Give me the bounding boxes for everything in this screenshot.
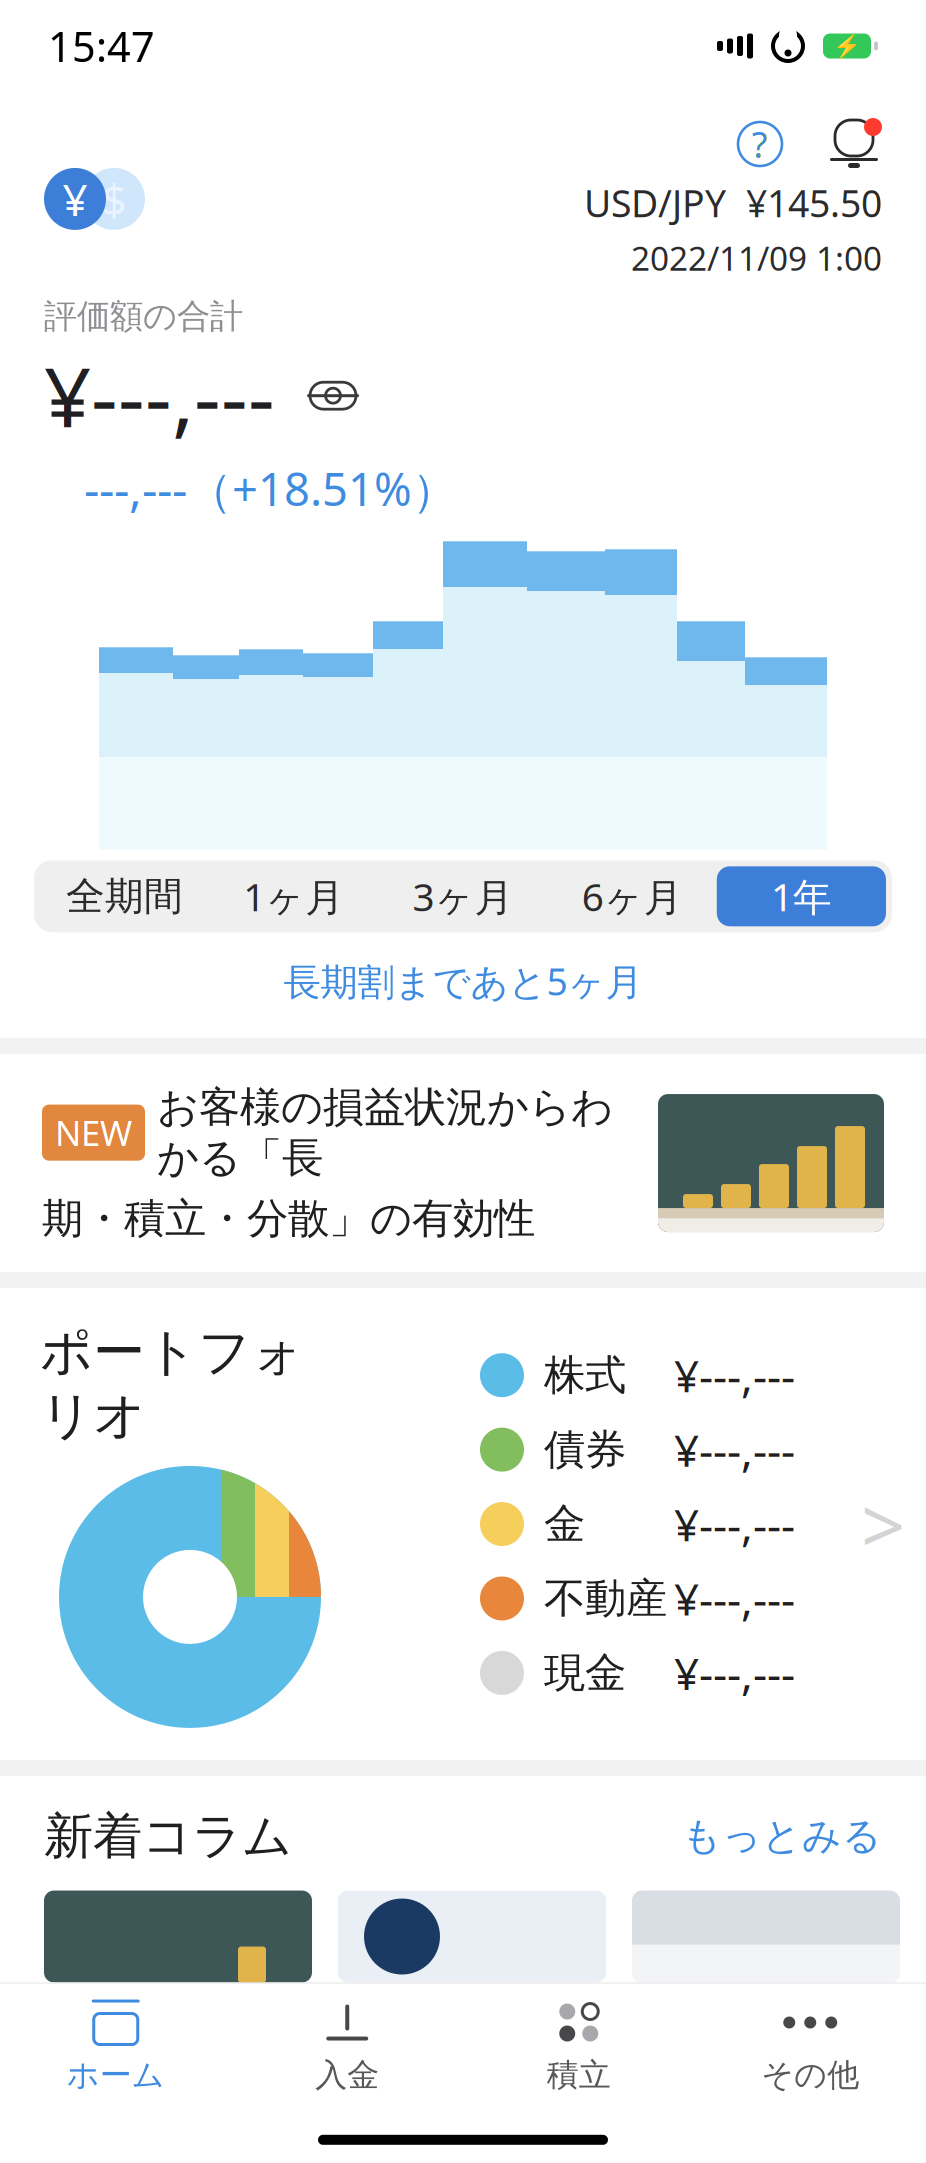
button[interactable]: 1年 bbox=[717, 866, 886, 926]
staticText: ¥---,--- bbox=[674, 1569, 795, 1628]
staticText: 長期割まであと5ヶ月 bbox=[283, 956, 642, 1006]
staticText: その他 bbox=[761, 2055, 859, 2095]
staticText: 株式 bbox=[544, 1350, 626, 1401]
staticText: ¥---,--- bbox=[674, 1420, 795, 1479]
button[interactable]: 積立 bbox=[463, 1999, 694, 2095]
staticText: ホーム bbox=[67, 2055, 165, 2095]
button[interactable]: 1ヶ月 bbox=[209, 866, 378, 926]
button[interactable]: 長期割まであと5ヶ月 bbox=[0, 932, 926, 1030]
button[interactable]: もっとみる bbox=[682, 1812, 882, 1860]
staticText: 6ヶ月 bbox=[582, 871, 683, 922]
staticText: 期・積立・分散」の有効性 bbox=[42, 1193, 535, 1244]
staticText: 評価額の合計 bbox=[44, 296, 243, 337]
button[interactable]: Toggle currency bbox=[44, 168, 150, 230]
button[interactable]: その他 bbox=[694, 1999, 926, 2095]
staticText: USD/JPY ¥145.50 bbox=[584, 178, 882, 228]
button[interactable]: ポートフォリオ bbox=[0, 1288, 926, 1760]
staticText: ポートフォリオ bbox=[40, 1320, 304, 1448]
staticText: 入金 bbox=[315, 2055, 379, 2095]
staticText: NEW bbox=[55, 1110, 132, 1156]
staticText: 3ヶ月 bbox=[412, 871, 513, 922]
staticText: 積立 bbox=[547, 2055, 611, 2095]
staticText: ⚡ bbox=[833, 33, 861, 59]
button[interactable]: 全期間 bbox=[40, 866, 209, 926]
staticText: 1ヶ月 bbox=[243, 871, 344, 922]
button[interactable]: NEW bbox=[0, 1054, 926, 1272]
staticText: 1年 bbox=[771, 871, 832, 922]
button[interactable]: ホーム bbox=[0, 1999, 231, 2095]
staticText: お客様の損益状況からわかる「長 bbox=[157, 1082, 613, 1183]
button[interactable] bbox=[632, 1890, 900, 1982]
button[interactable]: Hide balance bbox=[305, 373, 361, 419]
staticText: ¥---,--- bbox=[674, 1346, 795, 1404]
button[interactable] bbox=[44, 1890, 312, 1982]
staticText: 新着コラム bbox=[44, 1806, 292, 1866]
button[interactable]: 6ヶ月 bbox=[548, 866, 717, 926]
button[interactable] bbox=[338, 1890, 606, 1982]
staticText: ¥---,--- bbox=[674, 1644, 795, 1702]
staticText: 債券 bbox=[544, 1424, 626, 1475]
staticText: 2022/11/09 1:00 bbox=[631, 236, 882, 280]
staticText: 全期間 bbox=[66, 873, 183, 920]
button[interactable]: 入金 bbox=[231, 1999, 463, 2095]
button[interactable]: 3ヶ月 bbox=[378, 866, 548, 926]
staticText: 金 bbox=[544, 1499, 585, 1549]
staticText: ¥---,--- bbox=[674, 1495, 795, 1553]
staticText: ¥---,--- bbox=[44, 341, 275, 451]
staticText: > bbox=[861, 1473, 905, 1575]
button[interactable]: Help bbox=[734, 118, 786, 170]
staticText: ¥ bbox=[62, 170, 87, 228]
staticText: もっとみる bbox=[682, 1812, 882, 1860]
staticText: （+18.51%） bbox=[187, 458, 457, 519]
button[interactable]: Notifications bbox=[826, 118, 882, 170]
staticText: 現金 bbox=[544, 1647, 626, 1698]
staticText: ---,--- bbox=[84, 457, 187, 520]
staticText: 不動産 bbox=[544, 1573, 667, 1624]
staticText: $ bbox=[101, 170, 126, 228]
staticText: ? bbox=[752, 120, 768, 168]
